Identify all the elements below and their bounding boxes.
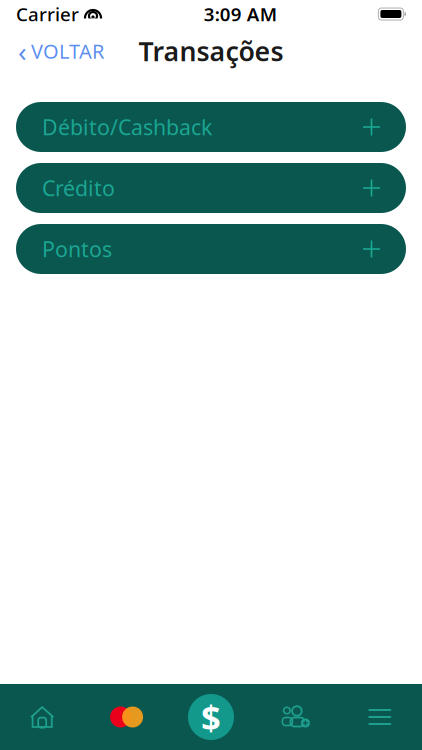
staticText: Pontos <box>42 235 112 263</box>
staticText: Carrier <box>16 2 79 26</box>
button[interactable]: Cartões <box>84 684 169 750</box>
button[interactable]: Crédito <box>16 163 406 213</box>
button[interactable]: ‹ <box>0 33 122 69</box>
button[interactable]: Indicar amigos <box>253 684 338 750</box>
button[interactable]: Início <box>0 684 84 750</box>
button[interactable]: Pontos <box>16 224 406 274</box>
staticText: Crédito <box>42 174 115 202</box>
staticText: VOLTAR <box>31 38 104 64</box>
staticText: $ <box>201 694 221 740</box>
staticText: ‹ <box>18 32 27 70</box>
staticText: Débito/Cashback <box>42 113 212 141</box>
button[interactable]: Débito/Cashback <box>16 102 406 152</box>
button[interactable]: Transações <box>169 684 253 750</box>
button[interactable]: Menu <box>338 684 422 750</box>
staticText: Transações <box>138 33 283 69</box>
staticText: 3:09 AM <box>204 2 277 26</box>
